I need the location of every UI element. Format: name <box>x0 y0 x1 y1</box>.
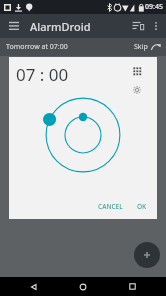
staticText: CANCEL <box>98 202 123 211</box>
button[interactable]: Settings <box>128 81 146 99</box>
staticText: 09:45 <box>145 2 163 12</box>
staticText: AlarmDroid <box>30 19 91 34</box>
button[interactable]: Open navigation drawer <box>4 16 24 36</box>
button[interactable]: Clock dial <box>38 90 128 180</box>
button[interactable]: Skip <box>134 42 161 52</box>
staticText: Tomorrow at 07:00 <box>6 42 68 52</box>
staticText: OK <box>137 202 147 211</box>
button[interactable]: Back <box>19 277 49 296</box>
staticText: 07 : 00 <box>16 63 69 86</box>
button[interactable]: Recent apps <box>117 277 147 296</box>
button[interactable]: Switch to keypad input <box>128 62 146 80</box>
button[interactable]: More options <box>148 18 164 34</box>
button[interactable]: Sort <box>128 16 148 36</box>
staticText: Skip <box>134 42 148 52</box>
button[interactable]: CANCEL <box>94 199 127 214</box>
button[interactable]: Add alarm <box>134 242 160 268</box>
button[interactable]: Home <box>68 277 98 296</box>
button[interactable]: OK <box>133 199 151 214</box>
